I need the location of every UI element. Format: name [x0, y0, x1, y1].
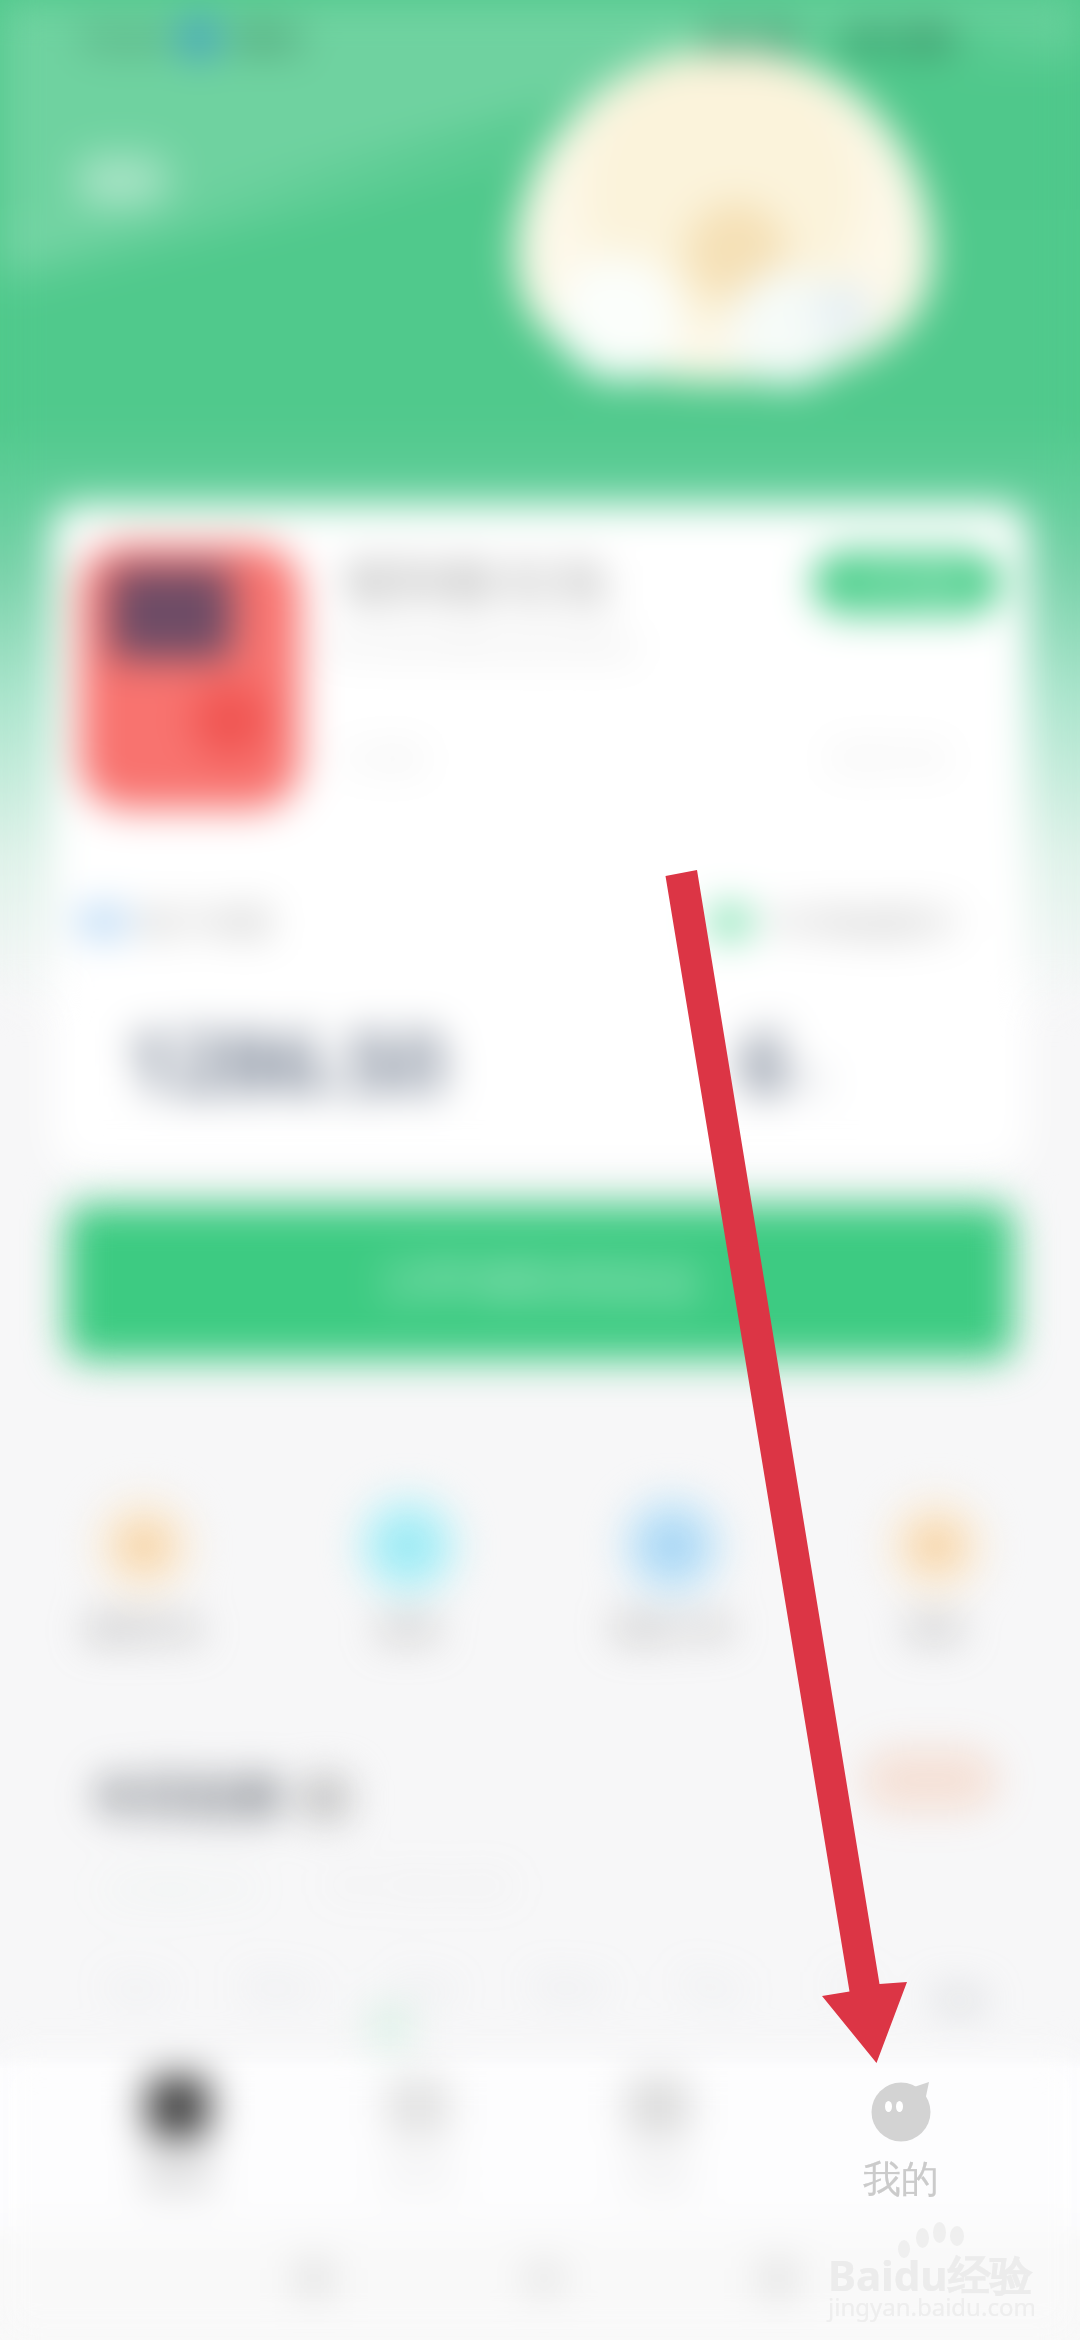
staticText: 1286.50 — [126, 1002, 446, 1119]
button[interactable]: 首页 — [58, 2058, 298, 2226]
staticText: 立即领取 — [843, 563, 971, 603]
staticText: 签到领 红包 — [344, 546, 607, 614]
button[interactable]: 我的 — [810, 2074, 992, 2206]
button[interactable]: 我的订单 — [540, 1498, 804, 1648]
staticText: 首页 — [142, 2152, 214, 2197]
staticText: 今日收益统计 — [766, 902, 958, 942]
staticText: 今日任务 — [92, 1768, 284, 1828]
staticText: Fri — [833, 1962, 876, 2011]
button[interactable]: 发现 — [298, 2058, 538, 2226]
button[interactable]: 消息 — [538, 2058, 778, 2226]
staticText: Baidu经验 — [828, 2246, 1032, 2303]
staticText: 返回 — [88, 159, 156, 202]
button[interactable]: 更多 — [804, 1498, 1068, 1648]
staticText: 次 — [796, 1058, 830, 1101]
button[interactable]: 立即领取奖励金 — [66, 1204, 1014, 1360]
button[interactable]: 签到领 红包 — [52, 504, 1028, 1168]
button[interactable]: 提现 — [276, 1498, 540, 1648]
staticText: 我的 — [863, 2155, 939, 2203]
button[interactable]: 立即领取 — [814, 552, 1000, 614]
button[interactable] — [862, 1748, 998, 1812]
button[interactable]: 返回 — [70, 150, 174, 210]
staticText: 6 — [740, 1002, 790, 1119]
button[interactable]: 邀请好友 — [12, 1498, 276, 1648]
staticText: 提现 — [378, 1610, 438, 1648]
staticText: 邀请好友 — [84, 1610, 204, 1648]
staticText: 立即领取奖励金 — [379, 1253, 701, 1311]
staticText: 元起 — [386, 1058, 454, 1101]
staticText: jingyan.baidu.com — [828, 2290, 1036, 2323]
